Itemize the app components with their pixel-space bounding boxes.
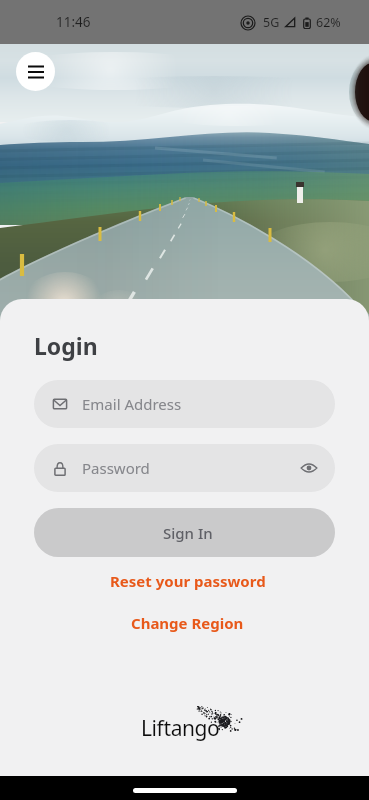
staticText: Login — [34, 330, 98, 361]
staticText: 62% — [316, 14, 341, 31]
staticText: Email Address — [82, 394, 182, 414]
staticText: 5G — [263, 14, 280, 31]
staticText: Password — [82, 458, 150, 478]
button[interactable]: Show password — [297, 456, 321, 480]
staticText: 11:46 — [56, 13, 91, 31]
button[interactable]: Email Address — [34, 380, 335, 428]
button[interactable]: Reset your password — [0, 568, 369, 594]
button[interactable]: Change Region — [0, 610, 369, 636]
button[interactable]: Password — [34, 444, 335, 492]
staticText: Liftango — [141, 714, 220, 743]
staticText: Sign In — [163, 523, 213, 543]
button[interactable]: Open navigation menu — [16, 52, 55, 91]
staticText: Change Region — [131, 613, 244, 633]
staticText: Reset your password — [110, 571, 266, 591]
button[interactable]: Sign In — [34, 508, 335, 557]
